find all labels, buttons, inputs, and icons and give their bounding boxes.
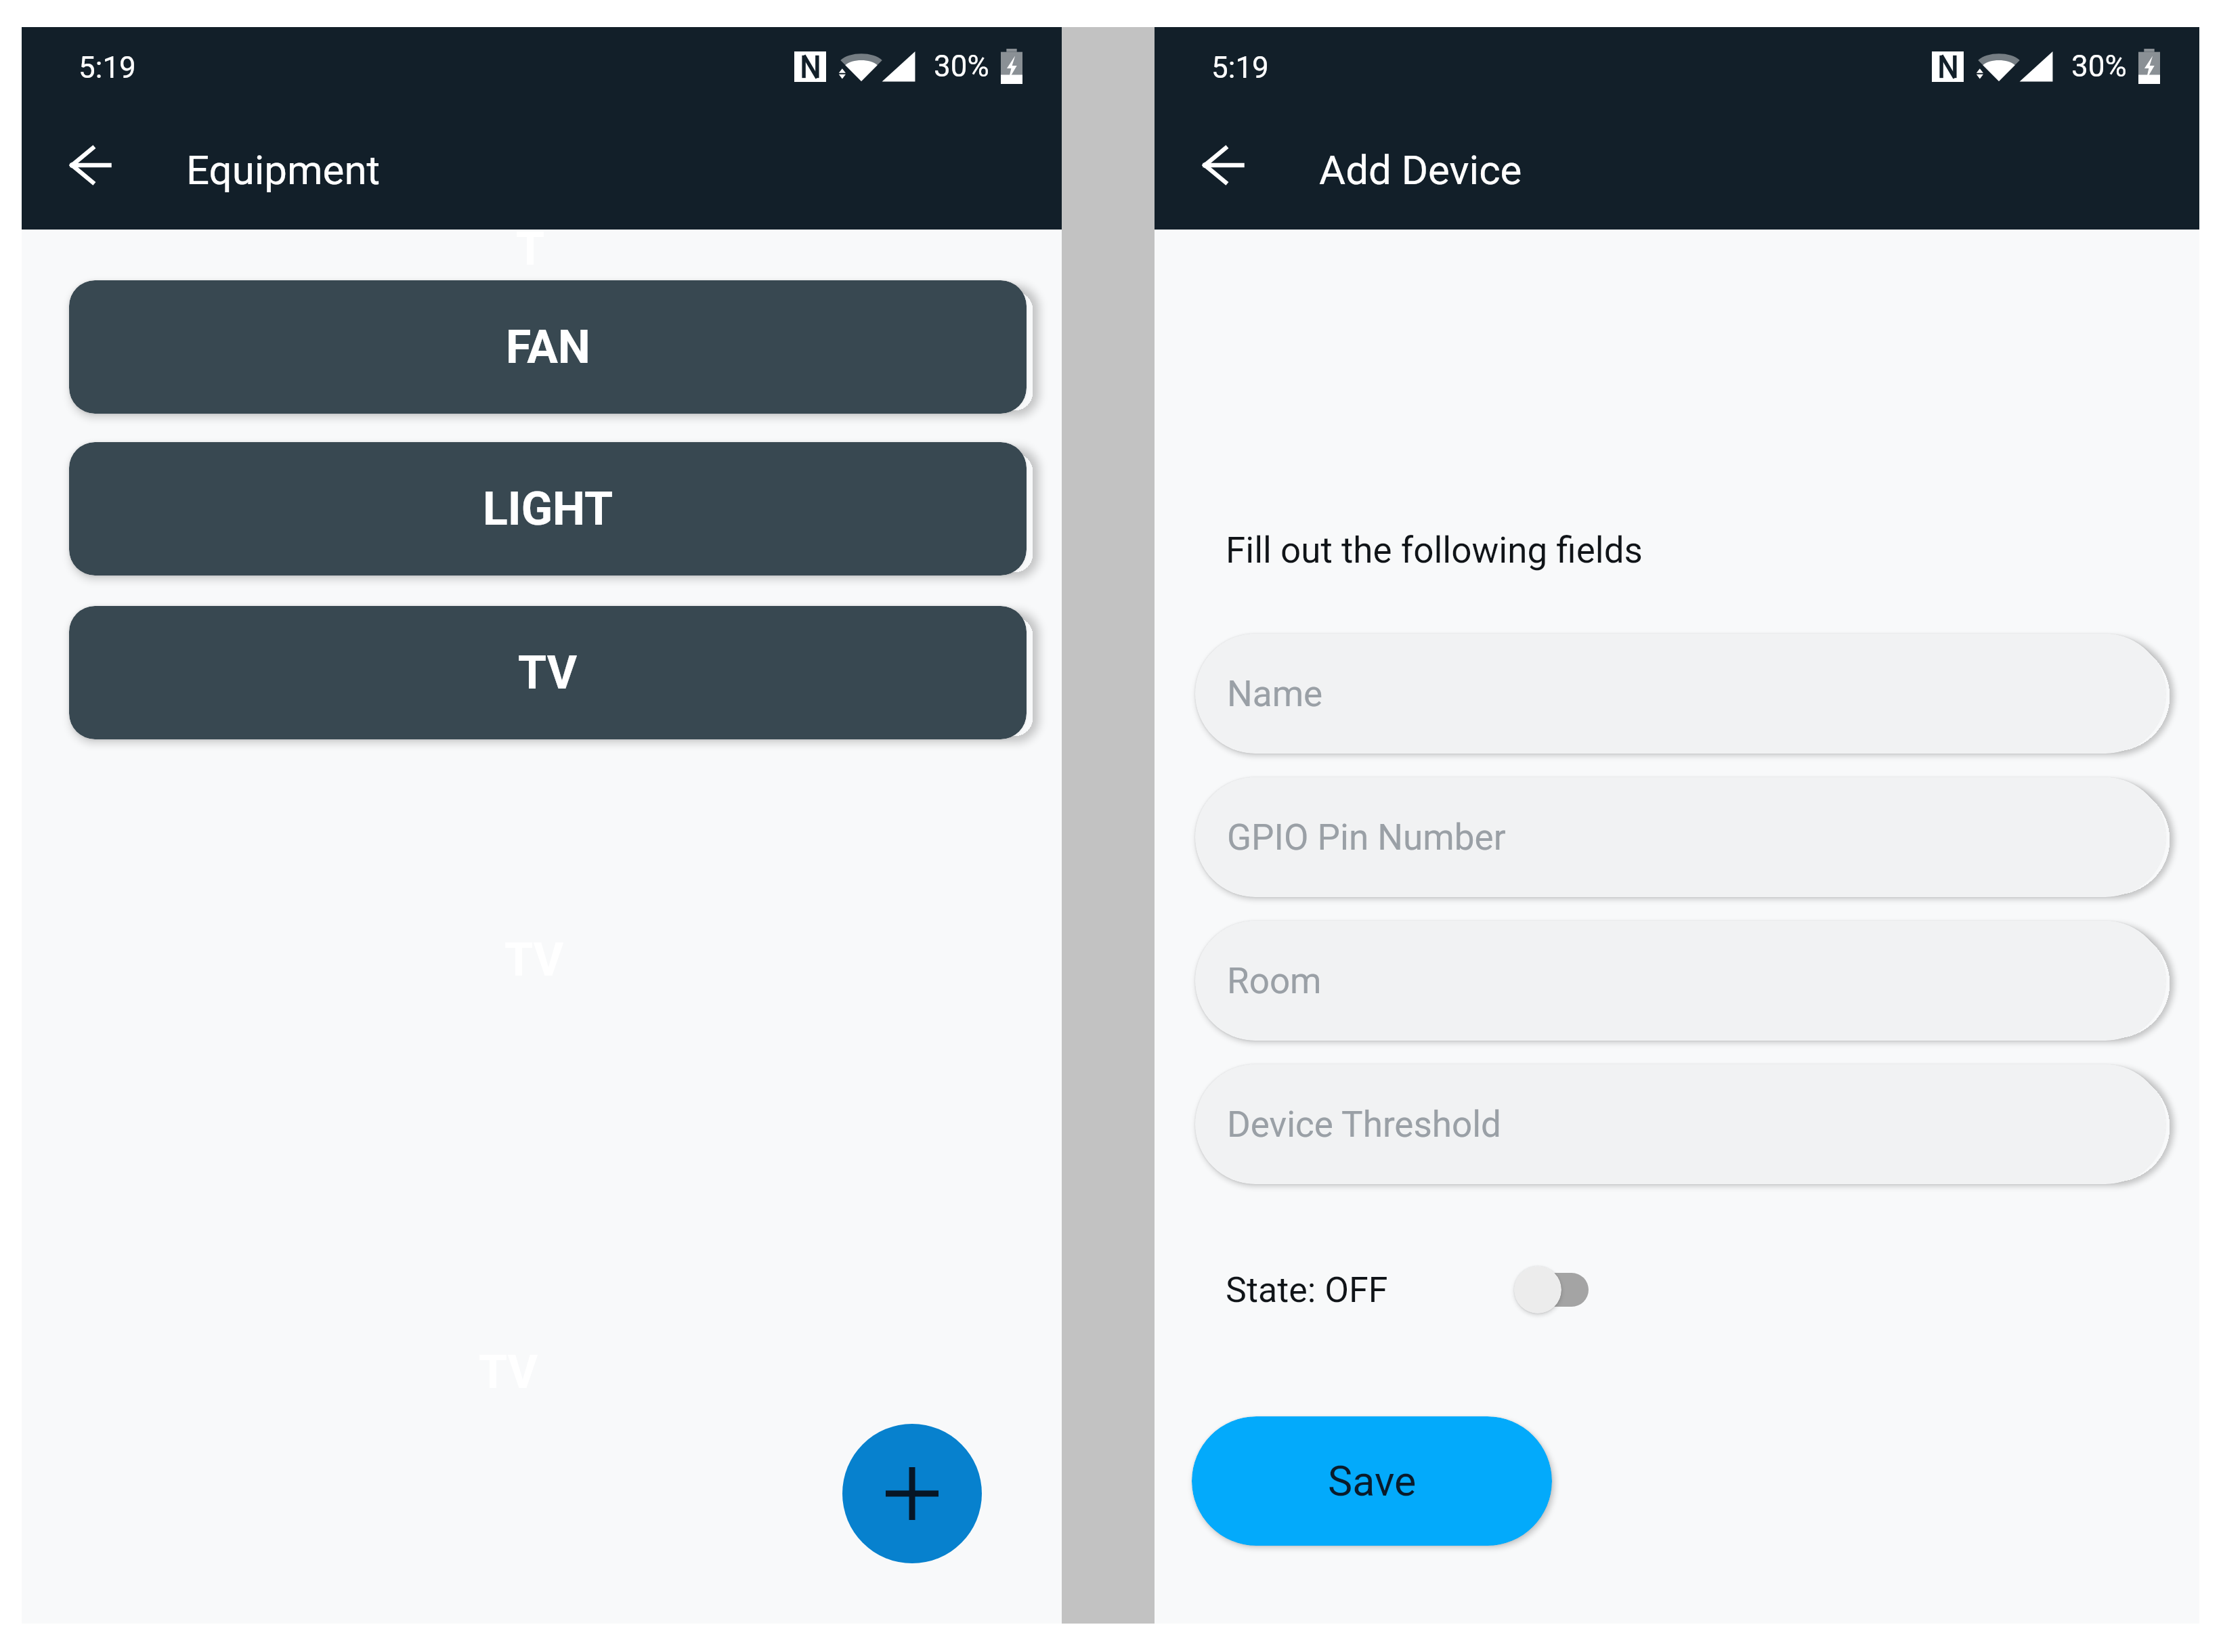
button[interactable]: Name	[1195, 634, 2165, 754]
button[interactable]: Device Threshold	[1195, 1064, 2165, 1184]
button[interactable]: TV	[69, 606, 1027, 739]
staticText: Fill out the following fields	[1226, 529, 1643, 571]
staticText: 5:19	[1211, 50, 1269, 85]
button[interactable]: Back	[1186, 128, 1261, 202]
button[interactable]: FAN	[69, 280, 1027, 414]
staticText: 5:19	[79, 50, 136, 85]
staticText: Save	[1328, 1457, 1417, 1505]
staticText: T	[516, 222, 545, 276]
staticText: Room	[1227, 960, 1322, 1002]
button[interactable]: Back	[53, 128, 128, 202]
staticText: TV	[518, 646, 578, 700]
button[interactable]: GPIO Pin Number	[1195, 777, 2165, 897]
staticText: Equipment	[186, 146, 381, 194]
staticText: Name	[1227, 673, 1323, 715]
staticText: 30%	[934, 49, 989, 84]
button[interactable]: Room	[1195, 921, 2165, 1041]
staticText: State: OFF	[1226, 1269, 1388, 1311]
staticText: GPIO Pin Number	[1227, 817, 1506, 858]
staticText: 30%	[2071, 49, 2127, 84]
staticText: Add Device	[1319, 146, 1522, 194]
staticText: Device Threshold	[1227, 1104, 1502, 1146]
button[interactable]: LIGHT	[69, 442, 1027, 575]
button[interactable]: Device state toggle	[1514, 1265, 1589, 1315]
staticText: FAN	[506, 320, 590, 374]
button[interactable]: Save	[1192, 1416, 1552, 1546]
staticText: LIGHT	[483, 482, 613, 536]
button[interactable]: Add device	[842, 1424, 982, 1563]
